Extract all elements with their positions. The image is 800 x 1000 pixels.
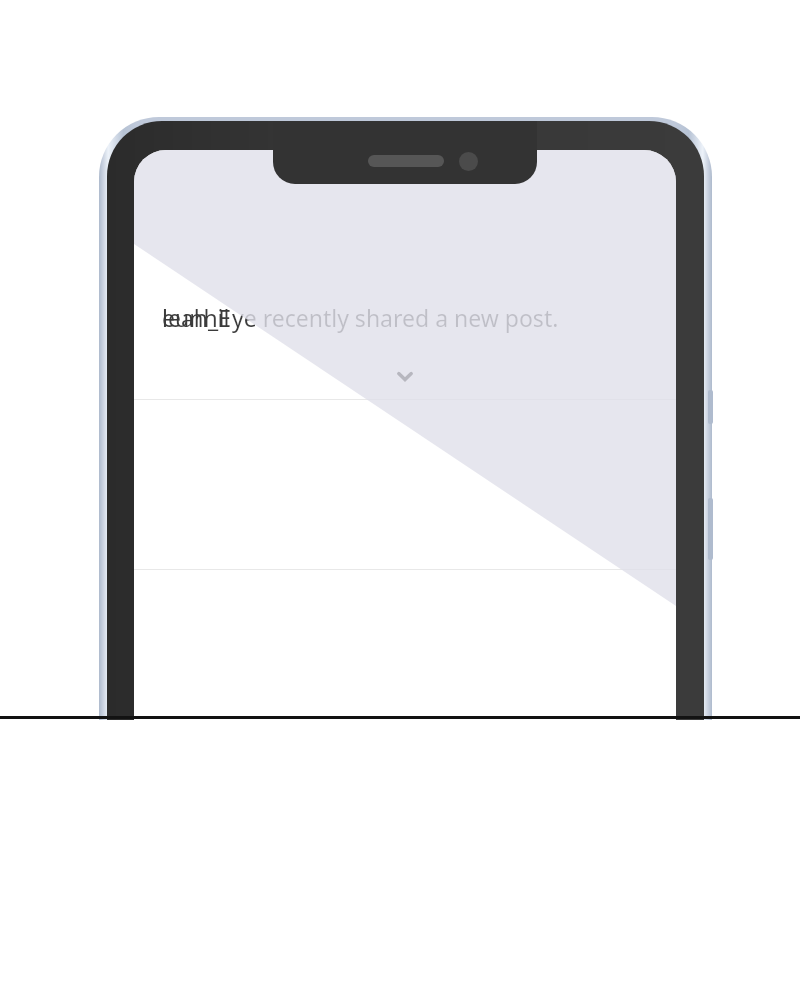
staticText: eunhil <box>162 302 230 333</box>
staticText: leah_E <box>162 302 232 333</box>
button[interactable]: leah_E <box>134 302 676 333</box>
button[interactable] <box>134 400 676 569</box>
staticText: ye recently shared a new post. <box>232 302 559 333</box>
button[interactable]: Expand notification <box>134 359 676 393</box>
